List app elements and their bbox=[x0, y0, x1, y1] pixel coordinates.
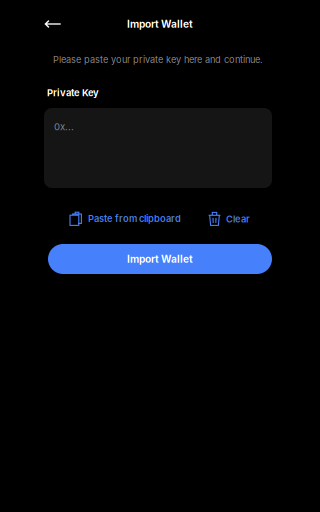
button[interactable]: Clear bbox=[208, 211, 250, 227]
staticText: 0x... bbox=[54, 121, 74, 133]
staticText: Import Wallet bbox=[127, 253, 193, 265]
staticText: Please paste your private key here and c… bbox=[53, 54, 263, 65]
button[interactable]: Paste from clipboard bbox=[69, 211, 181, 226]
staticText: Paste from clipboard bbox=[88, 213, 181, 224]
button[interactable]: Back bbox=[37, 9, 69, 39]
staticText: Import Wallet bbox=[127, 18, 193, 30]
staticText: Private Key bbox=[47, 87, 99, 98]
staticText: Clear bbox=[226, 213, 250, 225]
button[interactable]: Import Wallet bbox=[48, 244, 272, 274]
